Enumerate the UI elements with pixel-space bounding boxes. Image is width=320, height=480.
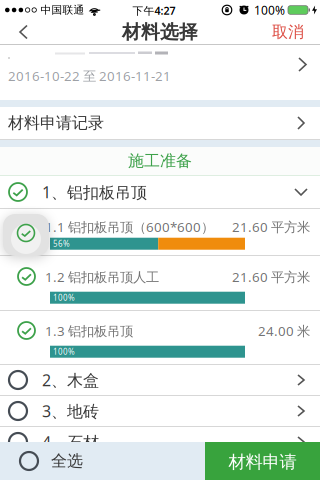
button[interactable]: 1.2 铝扣板吊顶人工 — [0, 256, 320, 310]
button[interactable]: 2016-10-22 至 2016-11-21 — [0, 45, 320, 100]
button[interactable]: 取消 — [272, 18, 320, 46]
staticText: 材料申请 — [228, 451, 296, 473]
staticText: 1.2 铝扣板吊顶人工 — [45, 268, 159, 286]
staticText: 56% — [53, 238, 70, 249]
staticText: 1、铝扣板吊顶 — [42, 181, 147, 203]
staticText: 取消 — [272, 22, 304, 42]
staticText: 2、木盒 — [42, 369, 99, 391]
button[interactable]: 1.3 铝扣板吊顶 — [0, 311, 320, 364]
staticText: 2016-10-22 至 2016-11-21 — [8, 67, 171, 85]
button[interactable]: 1.1 铝扣板吊顶（600*600） — [0, 209, 320, 255]
staticText: 全选 — [51, 451, 83, 471]
staticText: 中国联通 — [40, 3, 84, 16]
staticText: 21.60 平方米 — [232, 218, 310, 236]
staticText: 材料申请记录 — [8, 113, 104, 133]
staticText: 3、地砖 — [42, 400, 99, 422]
button[interactable]: 2、木盒 — [0, 365, 320, 395]
button[interactable]: 材料申请记录 — [0, 107, 320, 139]
staticText: 1.1 铝扣板吊顶（600*600） — [45, 218, 214, 236]
staticText: 21.60 平方米 — [232, 268, 310, 286]
staticText: 4、石材 — [42, 431, 99, 453]
staticText: 材料选择 — [122, 20, 198, 43]
staticText: 100% — [53, 292, 75, 303]
staticText: 1.3 铝扣板吊顶 — [45, 322, 133, 340]
staticText: 100% — [254, 2, 285, 18]
staticText: 100% — [53, 346, 75, 357]
button[interactable]: 3、地砖 — [0, 396, 320, 426]
button[interactable]: 4、石材 — [0, 427, 320, 457]
button[interactable]: Back — [0, 20, 27, 43]
staticText: 下午4:27 — [132, 3, 175, 18]
staticText: 24.00 米 — [258, 322, 310, 340]
button[interactable]: 1、铝扣板吊顶 — [0, 176, 320, 208]
staticText: 施工准备 — [128, 151, 192, 171]
button[interactable]: 全选 — [0, 442, 205, 480]
button[interactable]: 材料申请 — [205, 442, 320, 480]
